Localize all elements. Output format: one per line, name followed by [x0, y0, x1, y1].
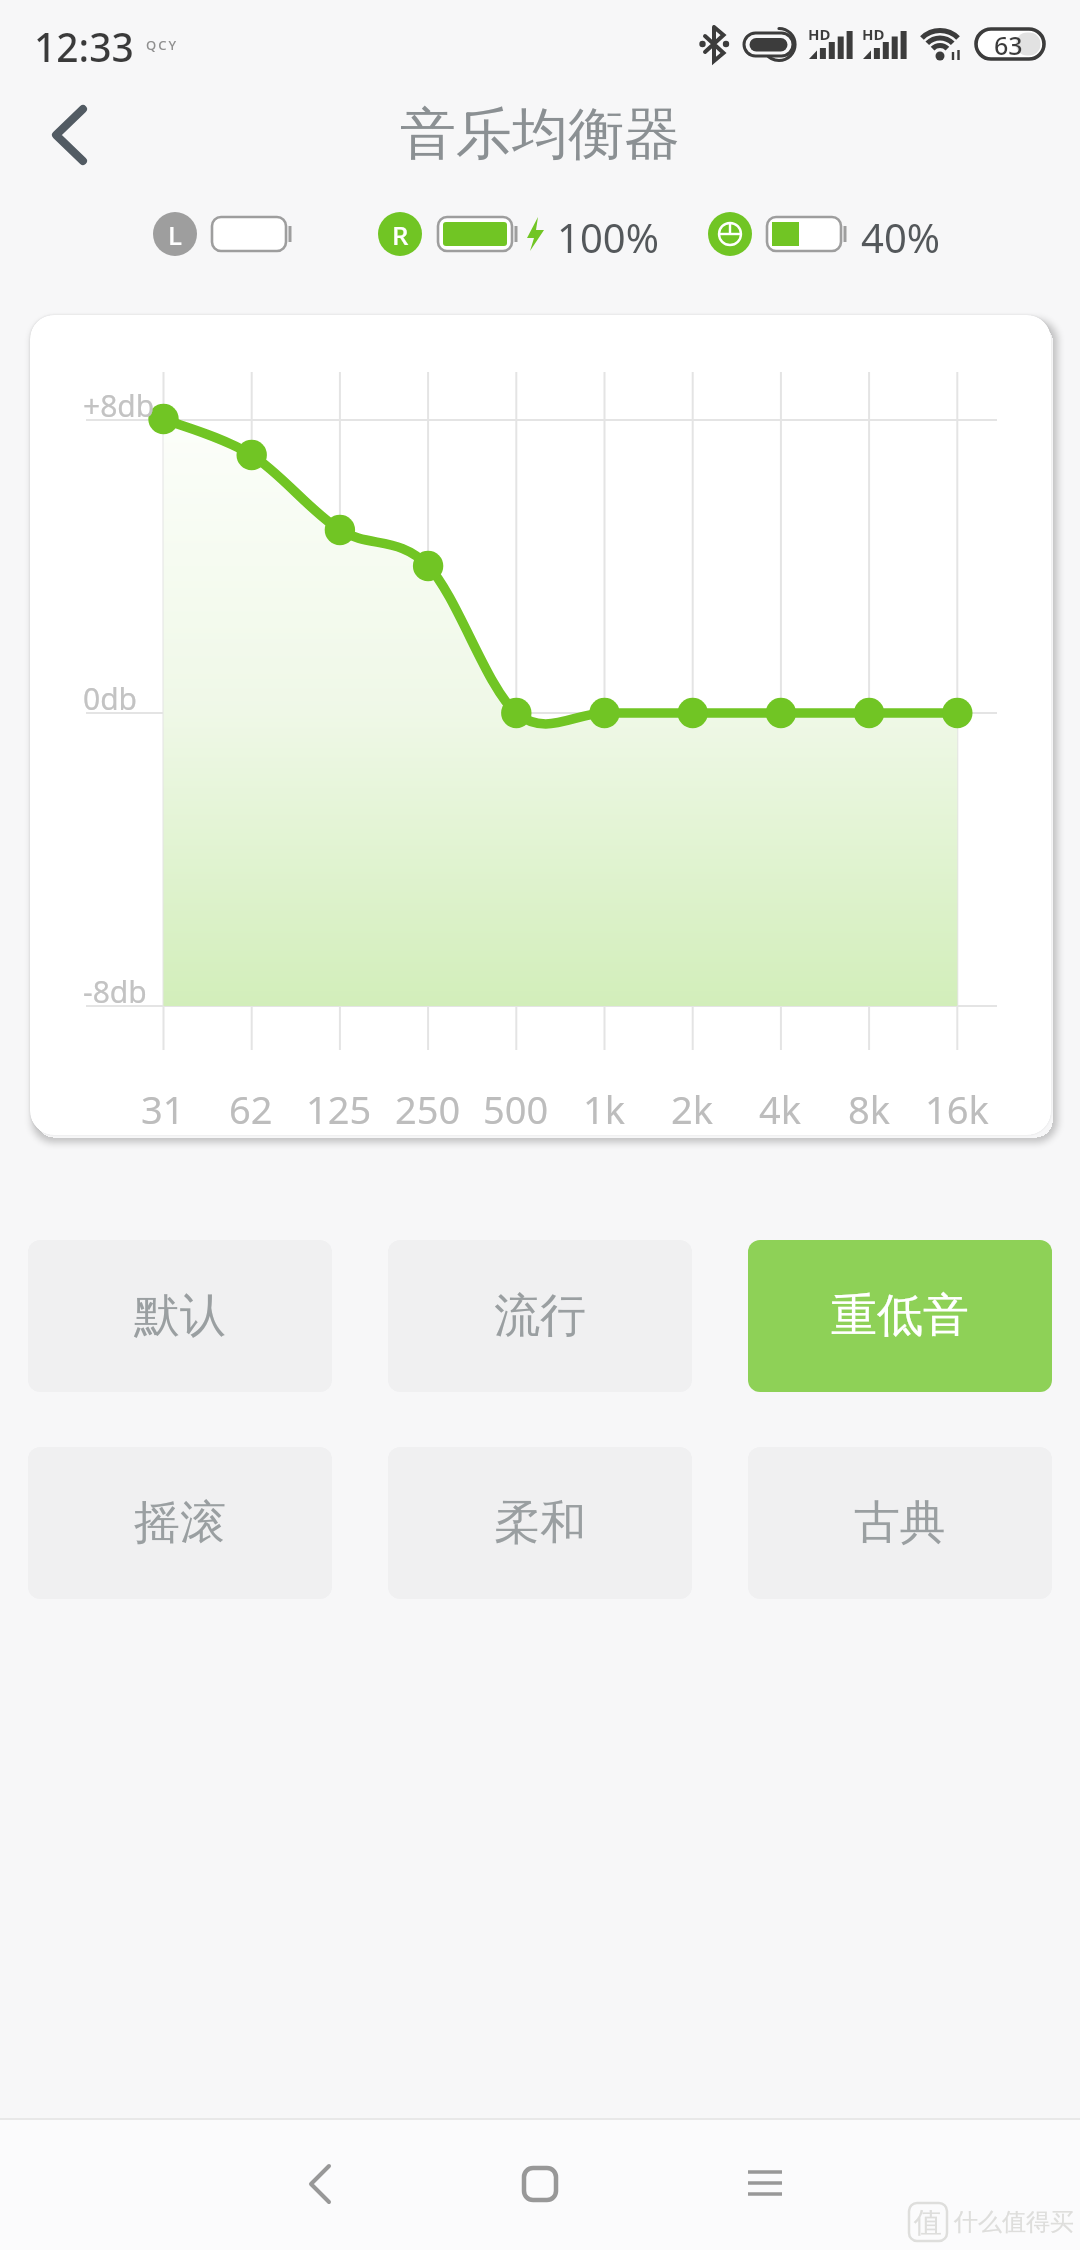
staticText: +8db	[83, 385, 155, 417]
button[interactable]: 重低音	[748, 1240, 1052, 1392]
button[interactable]	[480, 2124, 600, 2244]
staticText: 63	[994, 28, 1023, 60]
staticText: 柔和	[494, 1494, 586, 1552]
button[interactable]	[705, 2124, 825, 2244]
button[interactable]: 默认	[28, 1240, 332, 1392]
button[interactable]: 流行	[388, 1240, 692, 1392]
staticText: R	[392, 217, 409, 252]
staticText: 4k	[759, 1083, 802, 1127]
button[interactable]: 柔和	[388, 1447, 692, 1599]
staticText: QCY	[146, 36, 179, 54]
staticText: 500	[483, 1083, 549, 1127]
staticText: 100%	[557, 210, 659, 258]
staticText: 0db	[83, 678, 138, 710]
staticText: HD	[808, 24, 831, 44]
staticText: 31	[141, 1083, 185, 1127]
staticText: 默认	[134, 1287, 226, 1345]
staticText: 250	[395, 1083, 461, 1127]
staticText: 40%	[861, 210, 940, 258]
staticText: 重低音	[831, 1287, 969, 1345]
staticText: 12:33	[34, 20, 134, 68]
staticText: 什么值得买	[954, 2207, 1074, 2237]
button[interactable]	[30, 100, 110, 170]
button[interactable]	[260, 2124, 380, 2244]
staticText: 125	[306, 1083, 372, 1127]
staticText: 音乐均衡器	[400, 99, 680, 170]
staticText: 古典	[854, 1494, 946, 1552]
staticText: 值	[914, 2205, 942, 2240]
button[interactable]: 古典	[748, 1447, 1052, 1599]
staticText: 摇滚	[134, 1494, 226, 1552]
staticText: 62	[229, 1083, 273, 1127]
staticText: HD	[862, 24, 885, 44]
staticText: L	[168, 217, 182, 252]
staticText: 16k	[925, 1083, 989, 1127]
staticText: -8db	[83, 971, 147, 1003]
staticText: 流行	[494, 1287, 586, 1345]
staticText: 1k	[583, 1083, 626, 1127]
staticText: 8k	[848, 1083, 891, 1127]
staticText: 2k	[671, 1083, 714, 1127]
button[interactable]: 摇滚	[28, 1447, 332, 1599]
